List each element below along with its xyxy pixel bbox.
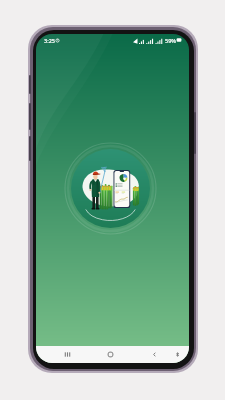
button[interactable]: Back	[145, 346, 164, 363]
button[interactable]: Home	[101, 346, 120, 363]
staticText: 3:25	[44, 37, 55, 44]
button[interactable]: Volume down	[29, 103, 31, 130]
button[interactable]: Volume up	[29, 75, 31, 94]
button[interactable]: Recent apps	[58, 346, 77, 363]
button[interactable]: Assistant	[29, 136, 31, 161]
staticText: 59%	[165, 37, 176, 44]
button[interactable]: Bluetooth	[168, 346, 187, 363]
